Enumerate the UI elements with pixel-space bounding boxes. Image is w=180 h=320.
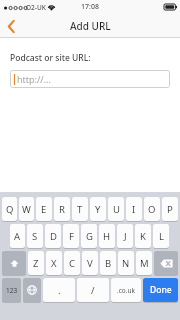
staticText: A	[14, 230, 21, 243]
button[interactable]: Done	[143, 278, 178, 302]
button[interactable]: Z	[28, 251, 44, 275]
button[interactable]: L	[153, 224, 169, 248]
button[interactable]: H	[99, 224, 115, 248]
button[interactable]: T	[72, 197, 88, 221]
staticText: O	[148, 203, 156, 216]
staticText: C	[69, 257, 76, 270]
staticText: http://…	[17, 73, 51, 85]
staticText: F	[69, 230, 74, 243]
button[interactable]: /	[77, 278, 109, 302]
button[interactable]: http://…	[10, 70, 170, 88]
staticText: O2-UK	[26, 3, 46, 12]
staticText: B	[105, 257, 112, 270]
staticText: P	[167, 203, 173, 216]
button[interactable]: B	[100, 251, 116, 275]
staticText: /	[91, 284, 95, 297]
button[interactable]: D	[45, 224, 61, 248]
staticText: .co.uk	[117, 286, 136, 295]
button[interactable]: E	[36, 197, 52, 221]
button[interactable]: O	[144, 197, 160, 221]
staticText: D	[50, 230, 57, 243]
button[interactable]: Change keyboard	[23, 278, 41, 302]
staticText: 17:08	[81, 2, 99, 12]
button[interactable]: R	[54, 197, 70, 221]
button[interactable]: X	[46, 251, 62, 275]
button[interactable]: I	[126, 197, 142, 221]
button[interactable]: J	[117, 224, 133, 248]
staticText: I	[132, 203, 136, 216]
button[interactable]: G	[81, 224, 97, 248]
button[interactable]: U	[108, 197, 124, 221]
staticText: R	[59, 203, 65, 216]
staticText: H	[103, 230, 111, 243]
staticText: X	[51, 257, 57, 270]
staticText: S	[32, 230, 38, 243]
button[interactable]: Shift	[2, 251, 26, 275]
button[interactable]: Y	[90, 197, 106, 221]
staticText: E	[41, 203, 47, 216]
staticText: V	[87, 257, 93, 270]
button[interactable]: Delete	[154, 251, 178, 275]
staticText: L	[159, 230, 164, 243]
button[interactable]: A	[10, 224, 25, 248]
button[interactable]: M	[136, 251, 152, 275]
staticText: 123	[6, 286, 18, 295]
staticText: K	[140, 230, 146, 243]
staticText: Add URL	[70, 19, 111, 33]
button[interactable]: S	[27, 224, 43, 248]
button[interactable]: .co.uk	[111, 278, 141, 302]
staticText: .	[58, 284, 61, 297]
button[interactable]: V	[82, 251, 98, 275]
staticText: G	[86, 230, 93, 243]
staticText: N	[122, 257, 130, 270]
button[interactable]: P	[162, 197, 178, 221]
staticText: U	[113, 203, 120, 216]
staticText: W	[22, 203, 31, 216]
button[interactable]: Back	[0, 15, 22, 37]
staticText: Podcast or site URL:	[10, 52, 91, 64]
button[interactable]: Q	[2, 197, 17, 221]
staticText: Q	[6, 203, 14, 216]
button[interactable]: K	[135, 224, 151, 248]
staticText: Done	[150, 284, 172, 296]
staticText: Z	[33, 257, 39, 270]
button[interactable]: W	[19, 197, 34, 221]
staticText: T	[77, 203, 83, 216]
button[interactable]: 123	[2, 278, 21, 302]
staticText: M	[140, 257, 149, 270]
button[interactable]: F	[63, 224, 79, 248]
button[interactable]: N	[118, 251, 134, 275]
staticText: J	[124, 230, 127, 243]
staticText: Y	[95, 203, 101, 216]
button[interactable]: C	[64, 251, 80, 275]
button[interactable]: .	[43, 278, 75, 302]
